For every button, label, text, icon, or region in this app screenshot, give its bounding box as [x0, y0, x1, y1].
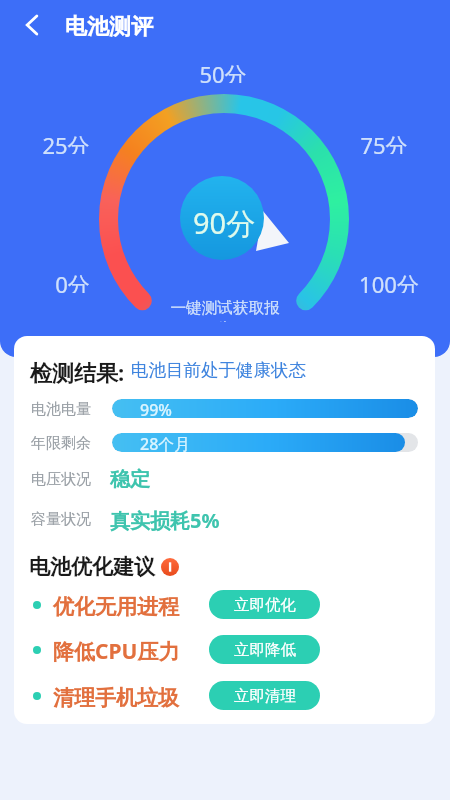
staticText: 0分 [55, 269, 90, 293]
staticText: 电池目前处于健康状态 [131, 359, 306, 381]
staticText: 立即优化 [234, 595, 296, 615]
staticText: 检测结果: [30, 357, 125, 387]
staticText: 28个月 [140, 433, 191, 452]
button[interactable]: 降低CPU压力 [33, 635, 320, 664]
staticText: 75分 [360, 130, 408, 154]
staticText: 电池电量 [31, 400, 91, 419]
staticText: 容量状况 [31, 510, 91, 529]
staticText: 50分 [199, 59, 247, 83]
staticText: 立即降低 [234, 640, 296, 660]
staticText: 优化无用进程 [53, 594, 179, 620]
staticText: 电池优化建议 [29, 554, 155, 580]
staticText: 清理手机垃圾 [53, 685, 179, 711]
button[interactable]: 清理手机垃圾 [33, 681, 320, 710]
button[interactable]: 立即降低 [209, 635, 320, 664]
button[interactable]: 90分 [180, 176, 264, 260]
staticText: 25分 [42, 130, 90, 154]
staticText: 电池测评 [65, 13, 153, 41]
button[interactable]: 立即清理 [209, 681, 320, 710]
staticText: 立即清理 [234, 686, 296, 706]
staticText: 90分 [193, 203, 256, 243]
button[interactable]: Back [10, 3, 54, 47]
staticText: 真实损耗5% [110, 507, 220, 534]
staticText: 电压状况 [31, 470, 91, 489]
staticText: 降低CPU压力 [53, 637, 180, 666]
button[interactable]: 优化无用进程 [33, 590, 320, 619]
staticText: 一键测试获取报告 [165, 298, 285, 322]
staticText: 100分 [359, 269, 419, 293]
staticText: 年限剩余 [31, 434, 91, 453]
staticText: 稳定 [110, 467, 150, 492]
staticText: 99% [140, 399, 172, 418]
button[interactable]: 立即优化 [209, 590, 320, 619]
